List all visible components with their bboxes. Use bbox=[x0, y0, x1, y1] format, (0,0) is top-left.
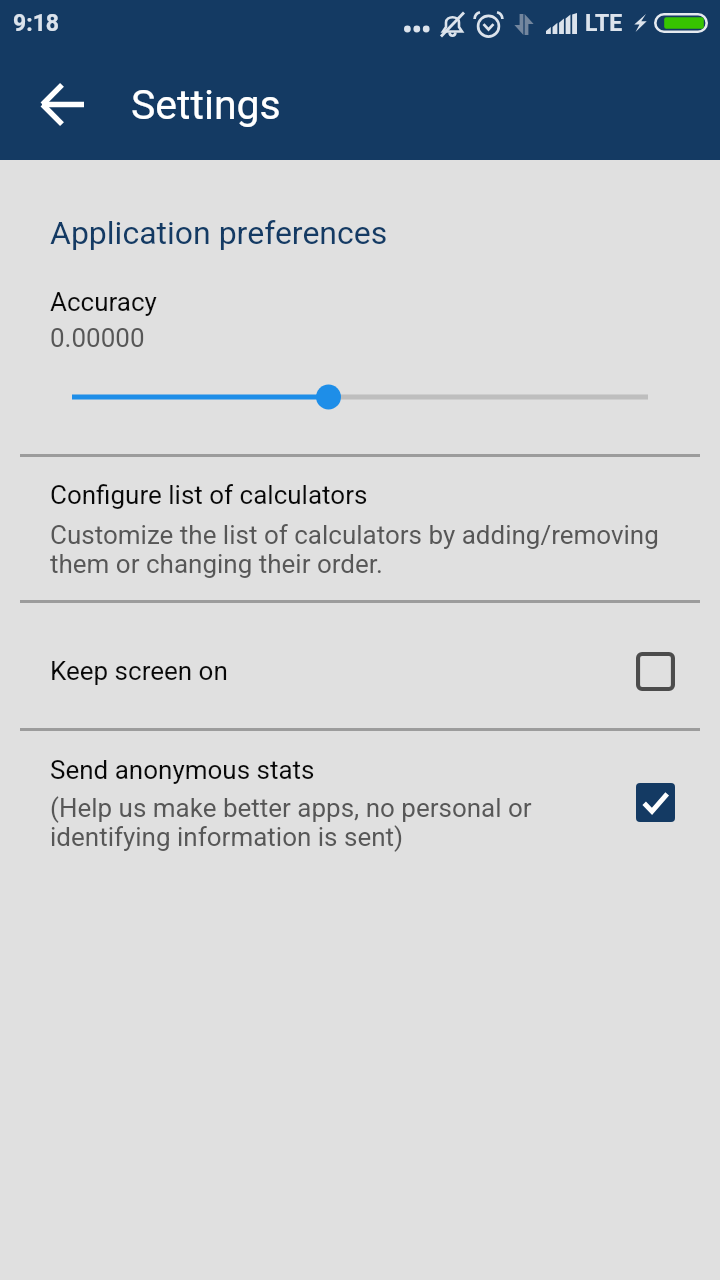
staticText: Application preferences bbox=[50, 214, 388, 252]
staticText: Keep screen on bbox=[50, 656, 228, 686]
staticText: them or changing their order. bbox=[50, 549, 383, 579]
staticText: identifying information is sent) bbox=[50, 822, 404, 852]
staticText: Send anonymous stats bbox=[50, 755, 315, 785]
button[interactable]: Checkbox, checked bbox=[621, 768, 689, 836]
staticText: (Help us make better apps, no personal o… bbox=[50, 793, 532, 823]
button[interactable]: Back bbox=[20, 62, 104, 146]
button[interactable]: Checkbox, not checked bbox=[621, 637, 689, 705]
button[interactable]: Configure list of calculators bbox=[0, 458, 720, 600]
button[interactable]: Accuracy slider bbox=[50, 369, 670, 425]
staticText: Accuracy bbox=[50, 287, 157, 317]
staticText: 9:18 bbox=[13, 10, 60, 37]
staticText: Settings bbox=[131, 81, 281, 129]
staticText: LTE bbox=[585, 10, 623, 37]
staticText: 0.00000 bbox=[50, 323, 145, 353]
button[interactable]: Keep screen on bbox=[0, 604, 720, 728]
staticText: Customize the list of calculators by add… bbox=[50, 520, 659, 550]
button[interactable]: Accuracy bbox=[0, 277, 720, 361]
button[interactable]: Send anonymous stats bbox=[0, 732, 720, 862]
staticText: Configure list of calculators bbox=[50, 480, 368, 510]
